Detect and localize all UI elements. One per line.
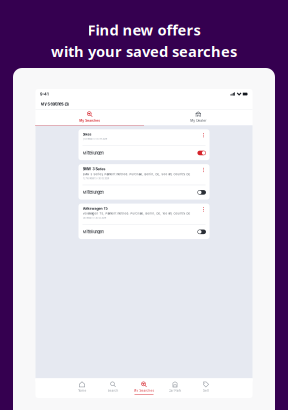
button[interactable]: Mitteilungen (78, 146, 209, 160)
staticText: My Searches (3) (40, 102, 68, 106)
staticText: Mitteilungen (82, 150, 103, 155)
button[interactable]: Sell (190, 381, 221, 395)
staticText: 230 Results (30.03.2024) (82, 217, 106, 219)
button[interactable]: Car Park (159, 381, 190, 395)
staticText: with your saved searches (51, 41, 237, 61)
staticText: Home (77, 389, 86, 392)
staticText: Mitteilungen (82, 190, 103, 195)
staticText: Bikes (82, 132, 91, 136)
staticText: My Searches (133, 389, 154, 392)
staticText: My Dealer (190, 119, 206, 122)
staticText: Sell (203, 389, 209, 392)
button[interactable]: Home (66, 381, 97, 395)
staticText: 1,113 Results (01.04.2024) (82, 138, 107, 140)
button[interactable]: My Searches (128, 381, 159, 395)
button[interactable]: Mitteilungen (78, 185, 209, 200)
button[interactable]: Search (97, 381, 128, 395)
staticText: Car Park (168, 389, 181, 392)
staticText: Search (107, 389, 118, 392)
staticText: BMW 3 Series, Payment method: Purchase, … (82, 173, 190, 176)
button[interactable]: BMW 3 Series (78, 164, 209, 185)
staticText: Find new offers (87, 20, 200, 39)
button[interactable]: My Searches (35, 109, 144, 126)
button[interactable]: Volkswagen T5 (78, 204, 209, 224)
button[interactable]: My Dealer (144, 109, 252, 126)
staticText: Mitteilungen (82, 229, 103, 234)
button[interactable]: Mitteilungen (78, 225, 209, 239)
button[interactable]: Bikes (78, 129, 209, 145)
staticText: Volkswagen T5, Payment method: Purchase,… (82, 212, 190, 215)
staticText: BMW 3 Series (82, 167, 105, 171)
staticText: Volkswagen T5 (82, 206, 107, 211)
staticText: 11,716 Results (30.03.2024) (82, 177, 109, 180)
staticText: 9:41 (40, 92, 49, 96)
staticText: My Searches (79, 119, 100, 122)
